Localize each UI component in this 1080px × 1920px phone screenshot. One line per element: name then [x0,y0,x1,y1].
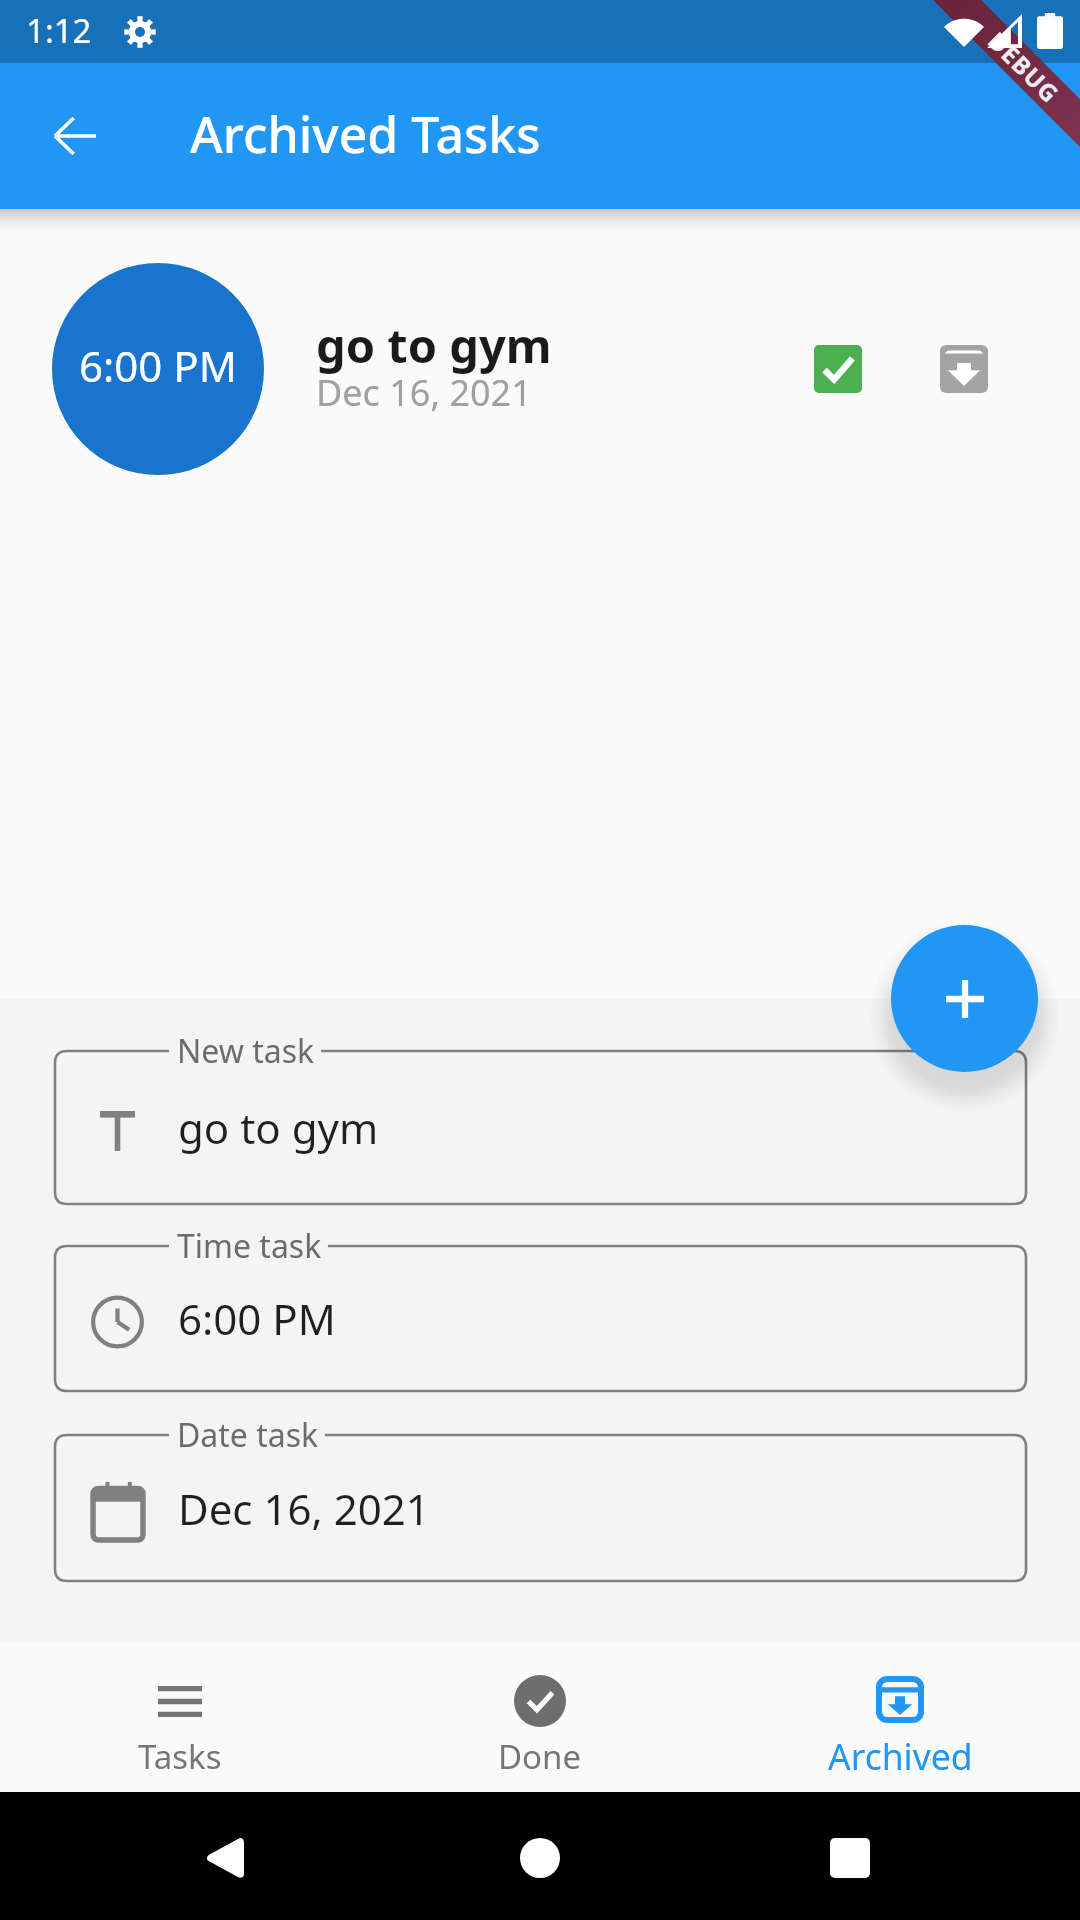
button[interactable]: Home [480,1798,600,1918]
button[interactable]: Add task [891,925,1038,1072]
staticText: Archived Tasks [190,100,541,168]
button[interactable]: Done [360,1642,720,1792]
button[interactable]: 6:00 PM [0,245,1080,493]
staticText: Archived [828,1732,973,1780]
button[interactable]: Archive [901,306,1027,432]
staticText: Date task [177,1413,319,1457]
staticText: Dec 16, 2021 [316,368,532,417]
button[interactable]: Archived [720,1642,1080,1792]
button[interactable]: Dec 16, 2021 [55,1435,1026,1581]
staticText: Time task [177,1224,322,1268]
staticText: go to gym [178,1099,379,1156]
button[interactable]: go to gym [55,1051,1026,1204]
button[interactable]: Back [27,88,123,184]
staticText: 1:12 [26,8,92,53]
staticText: 6:00 PM [79,337,237,394]
staticText: New task [177,1029,315,1073]
button[interactable]: Recents [790,1798,910,1918]
staticText: go to gym [316,313,552,377]
button[interactable]: 6:00 PM [55,1246,1026,1391]
button[interactable]: Tasks [0,1642,360,1792]
staticText: 6:00 PM [178,1290,336,1347]
staticText: Tasks [138,1734,222,1779]
button[interactable]: Back [165,1798,285,1918]
staticText: Done [498,1734,582,1779]
button[interactable]: Mark done [775,306,901,432]
staticText: Dec 16, 2021 [178,1480,430,1537]
